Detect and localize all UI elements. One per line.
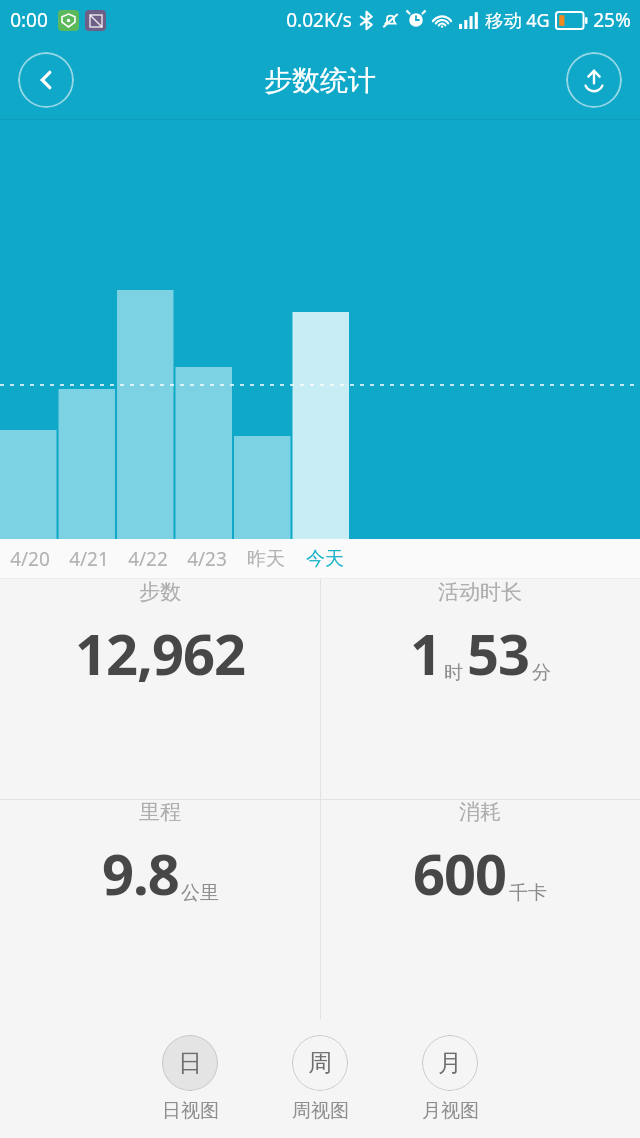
staticText: 日 xyxy=(178,1048,202,1078)
staticText: 千卡 xyxy=(509,881,547,905)
staticText: 昨天 xyxy=(247,547,285,571)
staticText: 25% xyxy=(593,7,631,33)
staticText: 分 xyxy=(532,661,551,685)
staticText: 0:00 xyxy=(10,7,48,33)
button[interactable]: 里程 xyxy=(0,799,320,911)
staticText: 12,962 xyxy=(75,615,246,691)
staticText: 活动时长 xyxy=(438,579,522,605)
staticText: 0.02K/s xyxy=(286,7,352,33)
button[interactable]: 活动时长 xyxy=(320,579,640,691)
staticText: 周视图 xyxy=(292,1099,349,1123)
staticText: 4/22 xyxy=(128,546,168,572)
staticText: 4/21 xyxy=(69,546,109,572)
button[interactable]: 步数 xyxy=(0,579,320,691)
button[interactable]: 周 xyxy=(271,1035,369,1123)
staticText: 时 xyxy=(444,661,463,685)
button[interactable]: Back xyxy=(18,52,74,108)
staticText: 月视图 xyxy=(422,1099,479,1123)
button[interactable]: 消耗 xyxy=(320,799,640,911)
staticText: 步数统计 xyxy=(264,63,376,98)
staticText: 周 xyxy=(308,1048,332,1078)
staticText: 里程 xyxy=(139,799,181,825)
button[interactable]: Share xyxy=(566,52,622,108)
staticText: 53 xyxy=(467,615,530,691)
staticText: 今天 xyxy=(306,547,344,571)
staticText: 月 xyxy=(438,1048,462,1078)
staticText: 步数 xyxy=(139,579,181,605)
staticText: 1 xyxy=(410,615,442,691)
staticText: 4/23 xyxy=(187,546,227,572)
staticText: 公里 xyxy=(181,881,219,905)
staticText: 4/20 xyxy=(10,546,50,572)
staticText: 移动 4G xyxy=(485,8,550,33)
staticText: 消耗 xyxy=(459,799,501,825)
staticText: 日视图 xyxy=(162,1099,219,1123)
staticText: 600 xyxy=(413,835,507,911)
button[interactable]: 日 xyxy=(141,1035,239,1123)
staticText: 9.8 xyxy=(102,835,179,911)
button[interactable]: 月 xyxy=(401,1035,499,1123)
